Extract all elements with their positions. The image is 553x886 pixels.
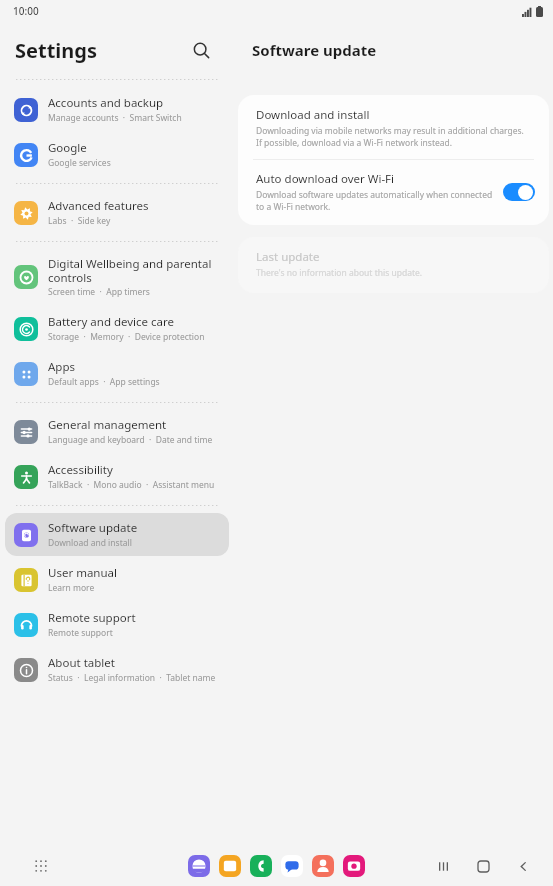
staticText: Downloading via mobile networks may resu…: [256, 125, 531, 149]
staticText: Google: [48, 140, 87, 156]
staticText: Storage · Memory · Device protection: [48, 331, 205, 343]
staticText: Remote support: [48, 610, 136, 626]
staticText: Accessibility: [48, 462, 113, 478]
button[interactable]: My Files: [219, 855, 241, 877]
button[interactable]: Digital Wellbeing and parental controls: [5, 249, 229, 305]
staticText: About tablet: [48, 655, 115, 671]
staticText: There's no information about this update…: [256, 267, 423, 279]
button[interactable]: Camera: [343, 855, 365, 877]
button[interactable]: Apps: [5, 352, 229, 395]
staticText: Download and install: [48, 537, 132, 549]
button[interactable]: Software update: [5, 513, 229, 556]
staticText: TalkBack · Mono audio · Assistant menu: [48, 479, 215, 491]
button[interactable]: Battery and device care: [5, 307, 229, 350]
button[interactable]: Last update: [238, 237, 549, 293]
button[interactable]: Advanced features: [5, 191, 229, 234]
staticText: Learn more: [48, 582, 95, 594]
button[interactable]: Phone: [250, 855, 272, 877]
button[interactable]: General management: [5, 410, 229, 453]
staticText: Advanced features: [48, 198, 149, 214]
button[interactable]: Search settings: [185, 34, 217, 66]
staticText: Last update: [256, 249, 320, 265]
staticText: Default apps · App settings: [48, 376, 160, 388]
staticText: Remote support: [48, 627, 113, 639]
staticText: Software update: [48, 520, 138, 536]
button[interactable]: Home: [471, 854, 495, 878]
staticText: Language and keyboard · Date and time: [48, 434, 213, 446]
button[interactable]: Remote support: [5, 603, 229, 646]
button[interactable]: All apps: [28, 853, 54, 879]
staticText: Labs · Side key: [48, 215, 111, 227]
button[interactable]: Accessibility: [5, 455, 229, 498]
staticText: Screen time · App timers: [48, 286, 150, 298]
staticText: Download software updates automatically …: [256, 189, 493, 213]
staticText: Digital Wellbeing and parental controls: [48, 256, 221, 285]
staticText: Download and install: [256, 107, 370, 123]
button[interactable]: Download and install: [238, 95, 549, 159]
button[interactable]: Recent apps: [431, 854, 455, 878]
button[interactable]: Auto download over Wi-Fi toggle, on: [503, 183, 535, 201]
staticText: Auto download over Wi-Fi: [256, 171, 395, 187]
button[interactable]: Back: [511, 854, 535, 878]
staticText: General management: [48, 417, 167, 433]
staticText: 10:00: [13, 4, 39, 18]
button[interactable]: Contacts: [312, 855, 334, 877]
button[interactable]: User manual: [5, 558, 229, 601]
button[interactable]: Messages: [281, 855, 303, 877]
staticText: Accounts and backup: [48, 95, 164, 111]
button[interactable]: Auto download over Wi-Fi: [238, 160, 549, 225]
staticText: Software update: [252, 40, 377, 60]
button[interactable]: About tablet: [5, 648, 229, 691]
staticText: Apps: [48, 359, 76, 375]
staticText: Settings: [15, 37, 97, 64]
staticText: Manage accounts · Smart Switch: [48, 112, 182, 124]
staticText: Battery and device care: [48, 314, 175, 330]
button[interactable]: Google: [5, 133, 229, 176]
staticText: User manual: [48, 565, 117, 581]
button[interactable]: Accounts and backup: [5, 88, 229, 131]
staticText: Status · Legal information · Tablet name: [48, 672, 216, 684]
staticText: Google services: [48, 157, 111, 169]
button[interactable]: Internet: [188, 855, 210, 877]
